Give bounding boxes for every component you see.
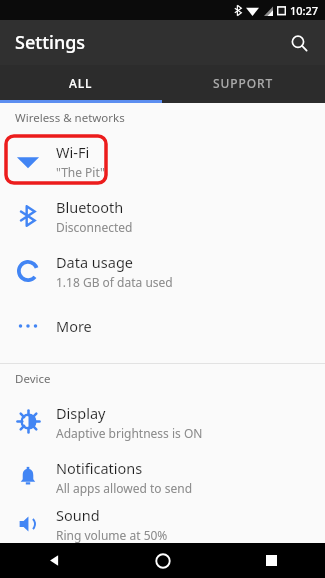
staticText: Settings (15, 30, 86, 55)
button[interactable]: Data usage (0, 243, 325, 298)
button[interactable]: Search (281, 25, 317, 61)
staticText: Wi-Fi (56, 142, 90, 162)
staticText: "The Pit" (56, 164, 105, 180)
staticText: SUPPORT (213, 75, 274, 91)
staticText: Bluetooth (56, 197, 124, 217)
staticText: Ring volume at 50% (56, 527, 168, 543)
staticText: ALL (69, 75, 93, 91)
staticText: Adaptive brightness is ON (56, 425, 203, 441)
staticText: Display (56, 403, 106, 423)
staticText: Disconnected (56, 219, 133, 235)
staticText: More (56, 316, 92, 336)
staticText: Notifications (56, 458, 143, 478)
staticText: 10:27 (290, 3, 319, 18)
staticText: Sound (56, 505, 100, 525)
staticText: Data usage (56, 252, 133, 272)
staticText: Wireless & networks (15, 110, 125, 126)
button[interactable]: SUPPORT (162, 65, 325, 100)
button[interactable]: Wi-Fi (0, 133, 325, 188)
staticText: 1.18 GB of data used (56, 274, 173, 290)
staticText: All apps allowed to send (56, 480, 193, 496)
button[interactable]: Notifications (0, 449, 325, 504)
button[interactable]: Bluetooth (0, 188, 325, 243)
button[interactable]: Display (0, 394, 325, 449)
button[interactable]: Sound (0, 504, 325, 543)
button[interactable]: ALL (0, 65, 162, 100)
button[interactable]: Home (109, 543, 217, 578)
staticText: Device (15, 371, 51, 387)
button[interactable]: More (0, 298, 325, 353)
button[interactable]: Recent apps (217, 543, 325, 578)
button[interactable]: Back (0, 543, 109, 578)
